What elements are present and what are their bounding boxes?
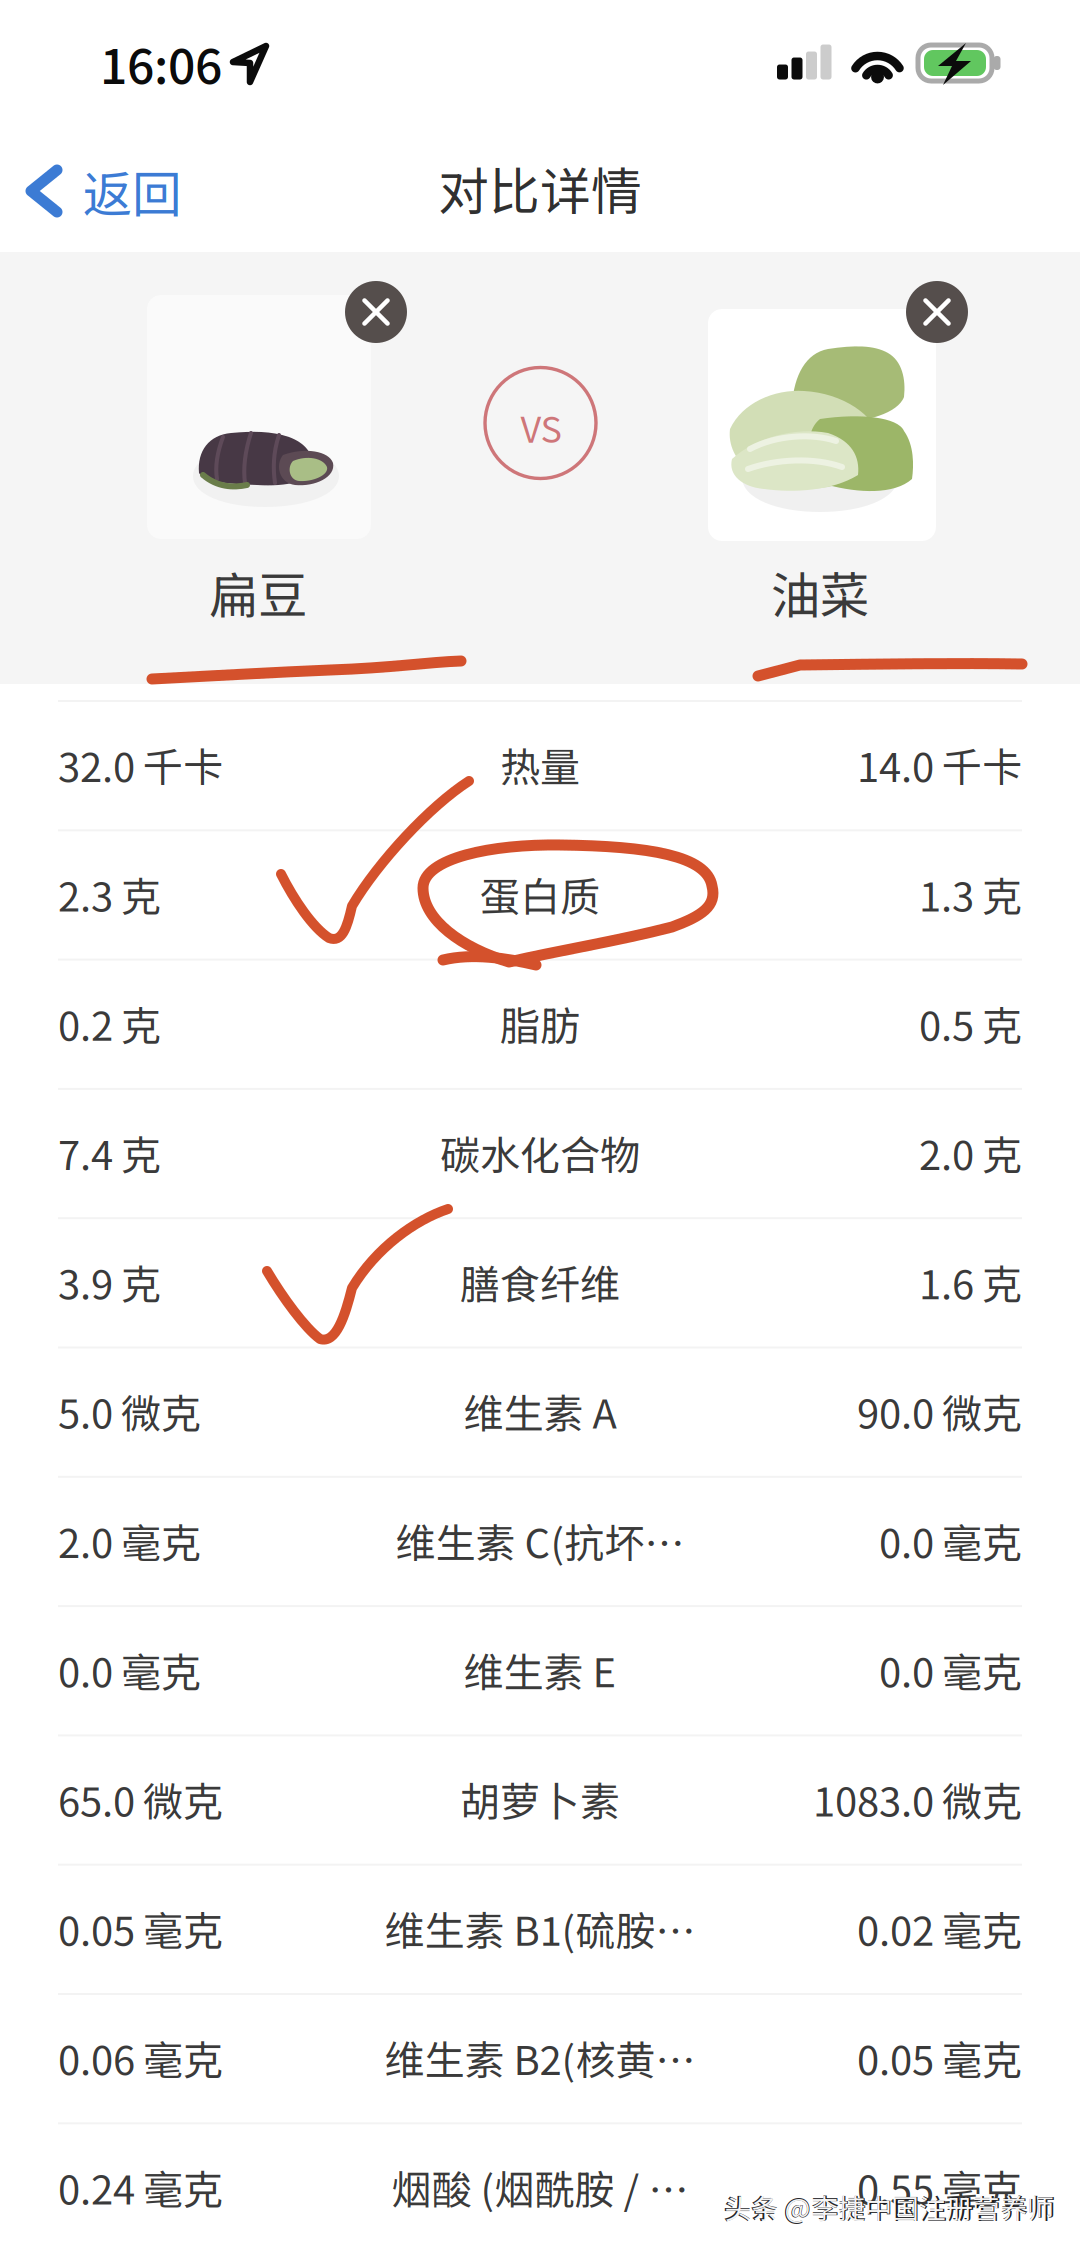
staticText: VS [520, 401, 561, 453]
staticText: 膳食纤维 [460, 1253, 620, 1311]
staticText: 0.05 毫克 [58, 1899, 223, 1957]
button[interactable]: 2.3 克 [0, 829, 1080, 959]
button[interactable]: 32.0 千卡 [0, 700, 1080, 829]
staticText: 0.02 毫克 [857, 1899, 1022, 1957]
staticText: 脂肪 [500, 994, 580, 1052]
staticText: 3.9 克 [58, 1253, 161, 1311]
staticText: 32.0 千卡 [58, 736, 223, 794]
staticText: 烟酸 (烟酰胺 / … [391, 2158, 688, 2216]
staticText: 头条 @李捷中国注册营养师 [724, 2187, 1053, 2227]
button[interactable]: 0.0 毫克 [0, 1605, 1080, 1734]
staticText: 0.5 克 [919, 994, 1022, 1052]
button[interactable]: 0.24 毫克 [0, 2122, 1080, 2242]
staticText: 2.0 克 [919, 1124, 1022, 1181]
staticText: 14.0 千卡 [857, 736, 1022, 794]
staticText: 0.0 毫克 [879, 1641, 1022, 1699]
staticText: 1083.0 微克 [813, 1770, 1022, 1828]
staticText: 0.05 毫克 [857, 2029, 1022, 2087]
staticText: 90.0 微克 [857, 1382, 1022, 1440]
button[interactable]: 0.2 克 [0, 959, 1080, 1088]
staticText: 维生素 E [463, 1641, 616, 1699]
staticText: 0.0 毫克 [58, 1641, 201, 1699]
staticText: 碳水化合物 [440, 1124, 640, 1181]
staticText: 头条 @李捷中国注册营养师 [723, 2187, 1054, 2227]
staticText: 蛋白质 [480, 865, 600, 923]
staticText: 1.3 克 [919, 865, 1022, 923]
staticText: 维生素 B2(核黄… [384, 2029, 695, 2087]
staticText: 0.55 毫克 [857, 2158, 1022, 2216]
button[interactable]: 移除 [345, 281, 407, 343]
staticText: 2.0 毫克 [58, 1511, 201, 1569]
staticText: 扁豆 [209, 556, 307, 628]
button[interactable]: 0.06 毫克 [0, 1993, 1080, 2122]
button[interactable]: 2.0 毫克 [0, 1476, 1080, 1605]
staticText: 0.06 毫克 [58, 2029, 223, 2087]
button[interactable]: 5.0 微克 [0, 1346, 1080, 1476]
staticText: 16:06 [100, 28, 222, 98]
button[interactable]: 0.05 毫克 [0, 1864, 1080, 1993]
staticText: 胡萝卜素 [460, 1770, 620, 1828]
button[interactable]: 返回 [0, 130, 210, 252]
button[interactable]: 3.9 克 [0, 1217, 1080, 1346]
staticText: 1.6 克 [919, 1253, 1022, 1311]
staticText: 0.2 克 [58, 994, 161, 1052]
staticText: 7.4 克 [58, 1124, 161, 1181]
staticText: 维生素 B1(硫胺… [384, 1899, 695, 1957]
staticText: 返回 [83, 155, 181, 227]
staticText: 65.0 微克 [58, 1770, 223, 1828]
staticText: 2.3 克 [58, 865, 161, 923]
staticText: 热量 [500, 736, 580, 794]
staticText: 5.0 微克 [58, 1382, 201, 1440]
button[interactable]: 65.0 微克 [0, 1734, 1080, 1864]
staticText: 对比详情 [438, 151, 642, 225]
button[interactable]: 移除 [906, 281, 968, 343]
staticText: 油菜 [771, 556, 869, 628]
staticText: 0.0 毫克 [879, 1511, 1022, 1569]
staticText: 维生素 C(抗坏… [395, 1511, 684, 1569]
staticText: 0.24 毫克 [58, 2158, 223, 2216]
button[interactable]: 7.4 克 [0, 1088, 1080, 1217]
staticText: 维生素 A [463, 1382, 616, 1440]
